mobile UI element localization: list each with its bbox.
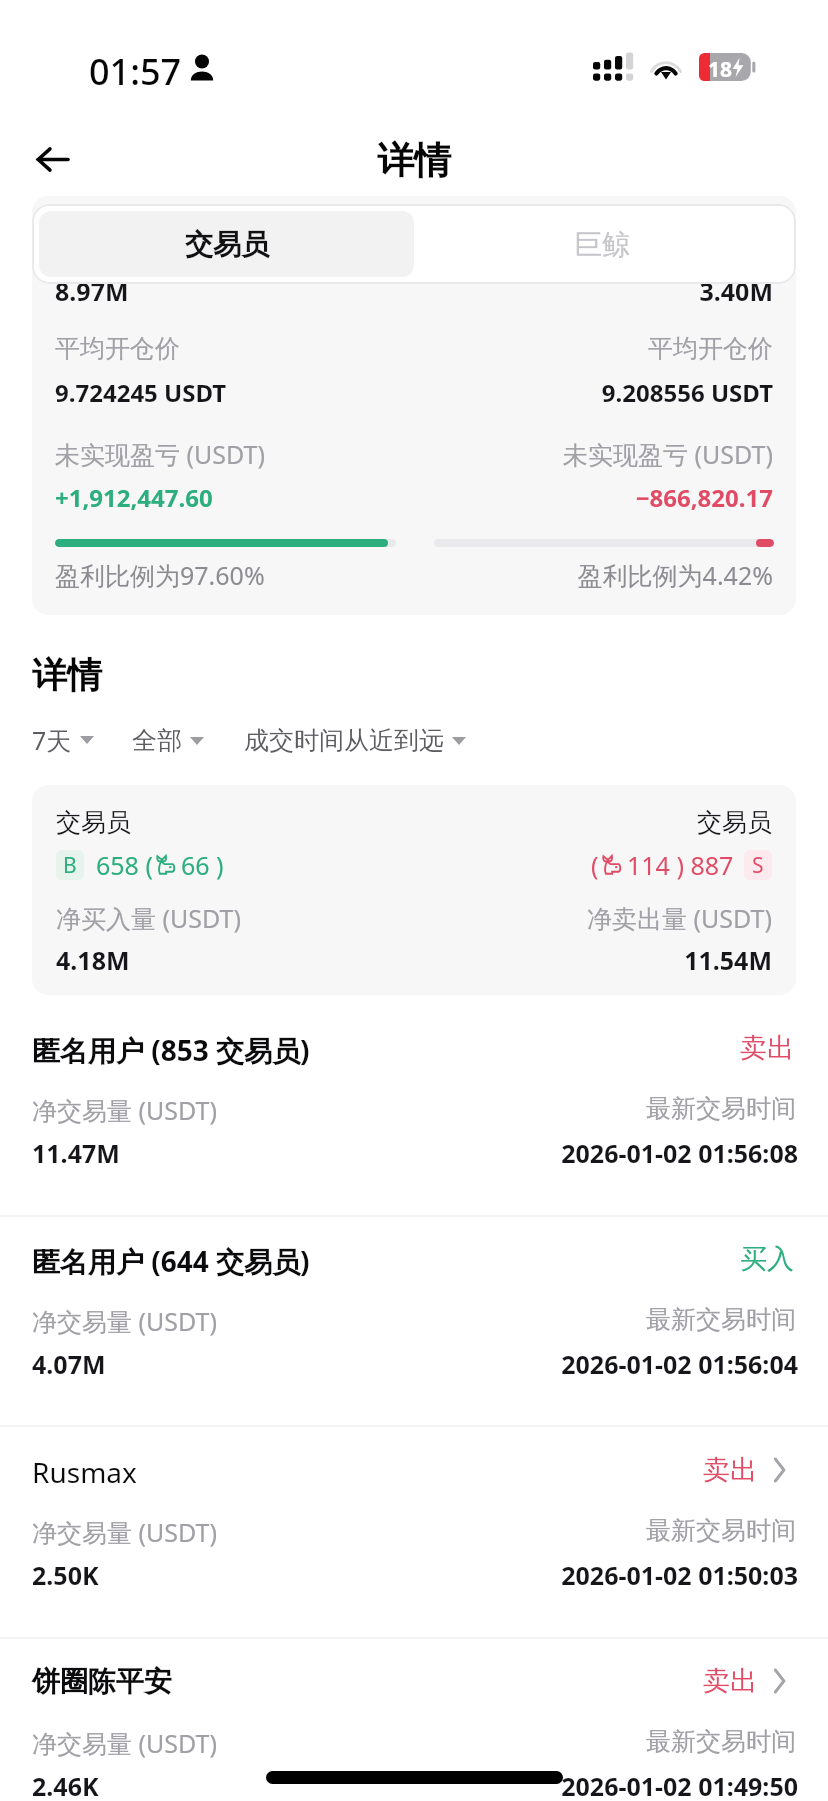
staticText: 全部	[132, 725, 182, 756]
button[interactable]: Back	[19, 126, 85, 192]
staticText: 2.46K	[32, 1769, 99, 1801]
staticText: 平均开仓价	[55, 333, 180, 364]
button[interactable]: 7天	[28, 717, 98, 763]
staticText: 4.18M	[56, 943, 130, 977]
staticText: 饼圈陈平安	[32, 1664, 172, 1699]
staticText: +1,912,447.60	[55, 481, 213, 514]
staticText: 2026-01-02 01:56:08	[0, 1136, 798, 1170]
staticText: 8.97M	[55, 274, 129, 308]
staticText: 最新交易时间	[0, 1093, 796, 1124]
staticText: 净交易量 (USDT)	[32, 1304, 217, 1338]
staticText: 未实现盈亏 (USDT)	[0, 437, 773, 471]
staticText: 卖出	[703, 1453, 757, 1487]
staticText: 2026-01-02 01:50:03	[0, 1558, 798, 1592]
staticText: 7天	[32, 723, 72, 757]
staticText: 未实现盈亏 (USDT)	[55, 437, 265, 471]
staticText: 平均开仓价	[0, 333, 773, 364]
button[interactable]: 成交时间从近到远	[240, 719, 470, 762]
button[interactable]	[0, 1437, 828, 1636]
staticText: 2.50K	[32, 1558, 99, 1592]
staticText: 成交时间从近到远	[244, 725, 444, 756]
staticText: B	[63, 851, 77, 880]
button[interactable]	[32, 785, 796, 995]
staticText: 114 ) 887	[627, 848, 734, 882]
staticText: 净卖出量 (USDT)	[0, 901, 772, 935]
staticText: 净交易量 (USDT)	[32, 1726, 217, 1760]
staticText: 盈利比例为97.60%	[55, 558, 265, 592]
staticText: 盈利比例为4.42%	[0, 558, 773, 592]
button[interactable]: 交易员	[39, 211, 414, 277]
staticText: 详情	[32, 653, 102, 697]
staticText: 匿名用户 (853 交易员)	[32, 1031, 310, 1069]
staticText: 18	[708, 55, 733, 84]
staticText: 最新交易时间	[0, 1515, 796, 1546]
staticText: 交易员	[0, 807, 772, 838]
button[interactable]: 巨鲸	[414, 211, 789, 277]
staticText: 详情	[377, 137, 451, 184]
staticText: 最新交易时间	[0, 1304, 796, 1335]
staticText: 净买入量 (USDT)	[56, 901, 241, 935]
staticText: 匿名用户 (644 交易员)	[32, 1242, 310, 1280]
staticText: 4.07M	[32, 1347, 106, 1381]
staticText: 卖出	[703, 1664, 757, 1698]
staticText: 买入	[740, 1242, 794, 1276]
staticText: 658 (	[96, 848, 153, 882]
staticText: 巨鲸	[574, 227, 630, 262]
button[interactable]	[0, 1015, 828, 1214]
staticText: 最新交易时间	[0, 1726, 796, 1757]
button[interactable]	[0, 1226, 828, 1425]
staticText: Rusmax	[32, 1453, 137, 1491]
staticText: −866,820.17	[0, 481, 773, 514]
staticText: 11.54M	[0, 943, 772, 977]
staticText: 01:57	[89, 47, 182, 96]
staticText: 交易员	[56, 807, 131, 838]
staticText: 交易员	[185, 227, 269, 262]
staticText: 2026-01-02 01:49:50	[0, 1769, 798, 1801]
button[interactable]	[0, 1648, 828, 1801]
staticText: (	[591, 848, 599, 882]
staticText: 9.208556 USDT	[0, 376, 773, 409]
staticText: 11.47M	[32, 1136, 120, 1170]
staticText: 净交易量 (USDT)	[32, 1515, 217, 1549]
staticText: 卖出	[740, 1031, 794, 1065]
staticText: 2026-01-02 01:56:04	[0, 1347, 798, 1381]
staticText: 净交易量 (USDT)	[32, 1093, 217, 1127]
staticText: 66 )	[181, 848, 224, 882]
staticText: 3.40M	[0, 274, 773, 308]
button[interactable]: 全部	[128, 719, 208, 762]
staticText: 9.724245 USDT	[55, 376, 227, 409]
staticText: S	[752, 851, 764, 880]
